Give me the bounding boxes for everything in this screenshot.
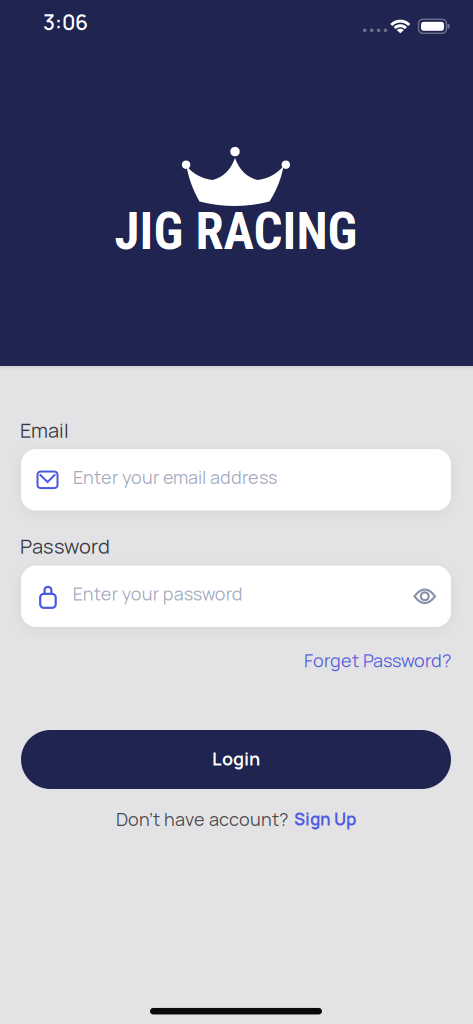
button[interactable]: Enter your password xyxy=(21,565,451,627)
staticText: Email xyxy=(20,416,69,444)
staticText: Sign Up xyxy=(294,807,356,831)
staticText: Login xyxy=(212,746,260,771)
staticText: 3:06 xyxy=(43,8,88,37)
button[interactable]: Login xyxy=(21,730,451,789)
button[interactable]: Sign Up xyxy=(294,807,356,831)
staticText: JIG RACING xyxy=(114,202,357,261)
staticText: Password xyxy=(20,532,110,560)
staticText: Don't have account? xyxy=(116,807,288,831)
staticText: Enter your email address xyxy=(73,465,277,489)
button[interactable]: Enter your email address xyxy=(21,449,451,511)
staticText: Enter your password xyxy=(73,581,243,606)
button[interactable]: Forget Password? xyxy=(304,648,451,673)
staticText: Forget Password? xyxy=(304,648,451,673)
button[interactable] xyxy=(414,588,435,604)
